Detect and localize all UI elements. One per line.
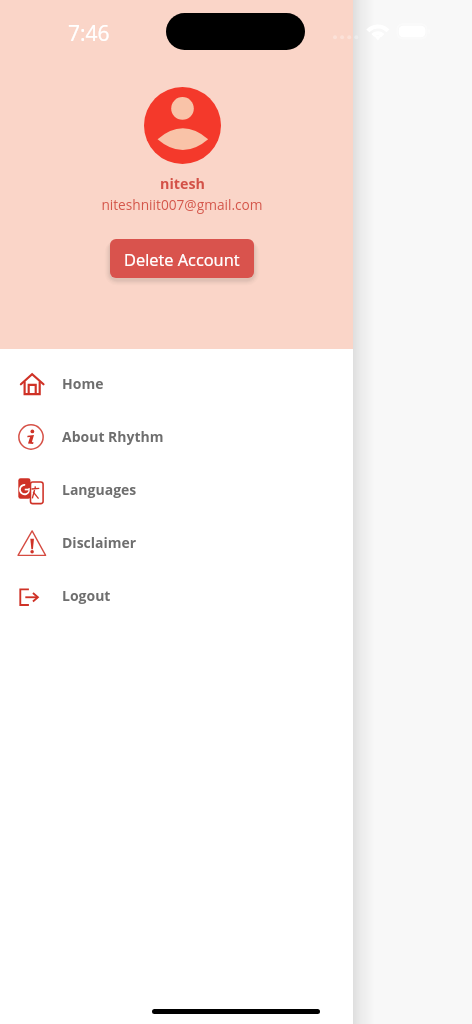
- button[interactable]: About Rhythm: [0, 410, 353, 463]
- staticText: About Rhythm: [62, 427, 164, 446]
- staticText: Home: [62, 374, 104, 393]
- staticText: Languages: [62, 480, 137, 499]
- staticText: Logout: [62, 586, 111, 605]
- staticText: Delete Account: [124, 248, 240, 270]
- button[interactable]: Logout: [0, 569, 353, 622]
- button[interactable]: Home: [0, 357, 353, 410]
- staticText: niteshniit007@gmail.com: [101, 195, 263, 214]
- staticText: 7:46: [68, 19, 110, 48]
- button[interactable]: Delete Account: [110, 239, 254, 278]
- staticText: Disclaimer: [62, 533, 137, 552]
- button[interactable]: Disclaimer: [0, 516, 353, 569]
- staticText: nitesh: [160, 174, 205, 193]
- button[interactable]: Languages: [0, 463, 353, 516]
- button[interactable]: Profile photo: [144, 87, 221, 164]
